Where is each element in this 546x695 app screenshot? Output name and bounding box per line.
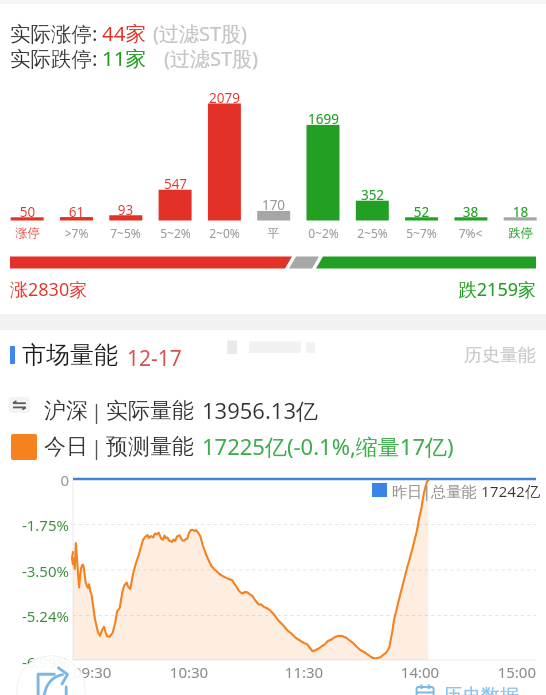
staticText: >7%: [52, 225, 101, 241]
staticText: -3.50%: [0, 561, 69, 581]
staticText: 15:00: [456, 662, 536, 682]
staticText: 7~5%: [101, 225, 150, 241]
staticText: 18: [498, 203, 543, 221]
button[interactable]: 历史数据: [403, 680, 539, 695]
staticText: 93: [103, 201, 148, 219]
staticText: 5~2%: [151, 225, 200, 241]
staticText: 352: [350, 186, 395, 204]
staticText: 历史数据: [443, 684, 519, 695]
staticText: 昨日|总量能: [392, 481, 477, 502]
staticText: 17242亿: [481, 481, 541, 502]
staticText: 0~2%: [299, 225, 348, 241]
staticText: 2~0%: [200, 225, 249, 241]
staticText: 1699: [301, 110, 346, 128]
staticText: 沪深: [44, 397, 88, 425]
staticText: 14:00: [380, 662, 460, 682]
staticText: -5.24%: [0, 606, 69, 626]
staticText: 实际量能: [106, 397, 194, 425]
staticText: |: [91, 434, 103, 461]
staticText: -6.99%: [0, 652, 69, 672]
staticText: 今日: [44, 433, 88, 461]
staticText: 跌2159家: [400, 277, 536, 302]
staticText: |: [91, 398, 103, 425]
staticText: 13956.13亿: [202, 395, 318, 425]
staticText: (过滤ST股): [164, 45, 259, 72]
staticText: 17225亿(-0.1%,缩量17亿): [202, 431, 454, 461]
staticText: 170: [251, 196, 296, 214]
staticText: 52: [399, 203, 444, 221]
staticText: 2~5%: [348, 225, 397, 241]
staticText: 历史量能: [455, 344, 536, 367]
staticText: 7%<: [446, 225, 495, 241]
staticText: 09:30: [73, 662, 112, 682]
staticText: -1.75%: [0, 515, 69, 535]
staticText: 预测量能: [106, 433, 194, 461]
staticText: 涨2830家: [10, 277, 88, 302]
staticText: 涨停: [3, 225, 52, 240]
staticText: 0: [0, 470, 69, 490]
button[interactable]: 历史量能: [455, 344, 536, 367]
staticText: 市场量能: [22, 340, 118, 370]
staticText: 实际跌停:: [10, 44, 98, 72]
staticText: 547: [153, 175, 198, 193]
staticText: 跌停: [496, 225, 545, 240]
staticText: 实际涨停:: [10, 19, 98, 47]
staticText: 2079: [202, 89, 247, 107]
staticText: 12-17: [127, 344, 182, 373]
staticText: 50: [5, 203, 50, 221]
staticText: 61: [54, 203, 99, 221]
staticText: 44家: [102, 19, 146, 47]
staticText: 11家: [102, 44, 146, 72]
staticText: (过滤ST股): [153, 20, 248, 47]
staticText: 38: [448, 203, 493, 221]
staticText: 5~7%: [397, 225, 446, 241]
staticText: 11:30: [264, 662, 344, 682]
staticText: 平: [249, 225, 298, 240]
staticText: 10:30: [149, 662, 229, 682]
button[interactable]: Share: [16, 655, 86, 695]
